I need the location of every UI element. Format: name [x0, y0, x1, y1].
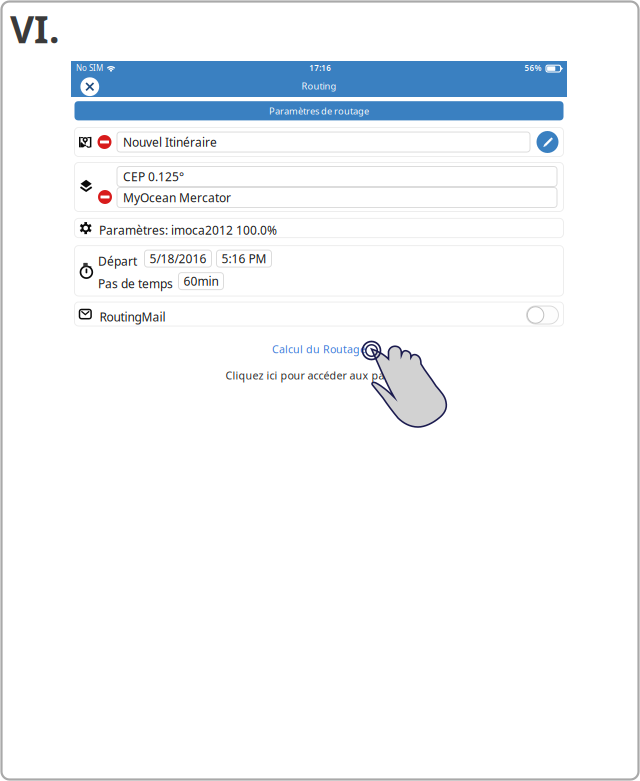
button[interactable]: RoutingMail [526, 306, 558, 324]
staticText: 5:16 PM [221, 251, 266, 266]
staticText: 17:16 [309, 63, 331, 73]
staticText: VI. [10, 4, 59, 54]
staticText: RoutingMail [99, 309, 165, 325]
staticText: Routing [301, 80, 336, 92]
button[interactable]: Edit route [535, 130, 559, 154]
staticText: Paramètres: imoca2012 100.0% [99, 222, 277, 238]
button[interactable]: Close [77, 76, 103, 98]
staticText: Cliquez ici pour accéder aux pages d [225, 368, 412, 382]
staticText: Paramètres de routage [269, 105, 369, 117]
staticText: 56% [525, 63, 542, 73]
staticText: Pas de temps [98, 276, 173, 291]
staticText: 5/18/2016 [149, 251, 206, 266]
staticText: Départ [98, 253, 137, 269]
staticText: CEP 0.125° [123, 168, 184, 184]
staticText: 60min [183, 273, 218, 289]
staticText: Nouvel Itinéraire [123, 134, 217, 150]
staticText: MyOcean Mercator [123, 189, 231, 205]
staticText: Calcul du Routage [272, 342, 366, 356]
staticText: No SIM [76, 63, 103, 73]
button[interactable]: Paramètres de routage [74, 101, 563, 120]
button[interactable]: Calcul du Routage [272, 342, 366, 356]
